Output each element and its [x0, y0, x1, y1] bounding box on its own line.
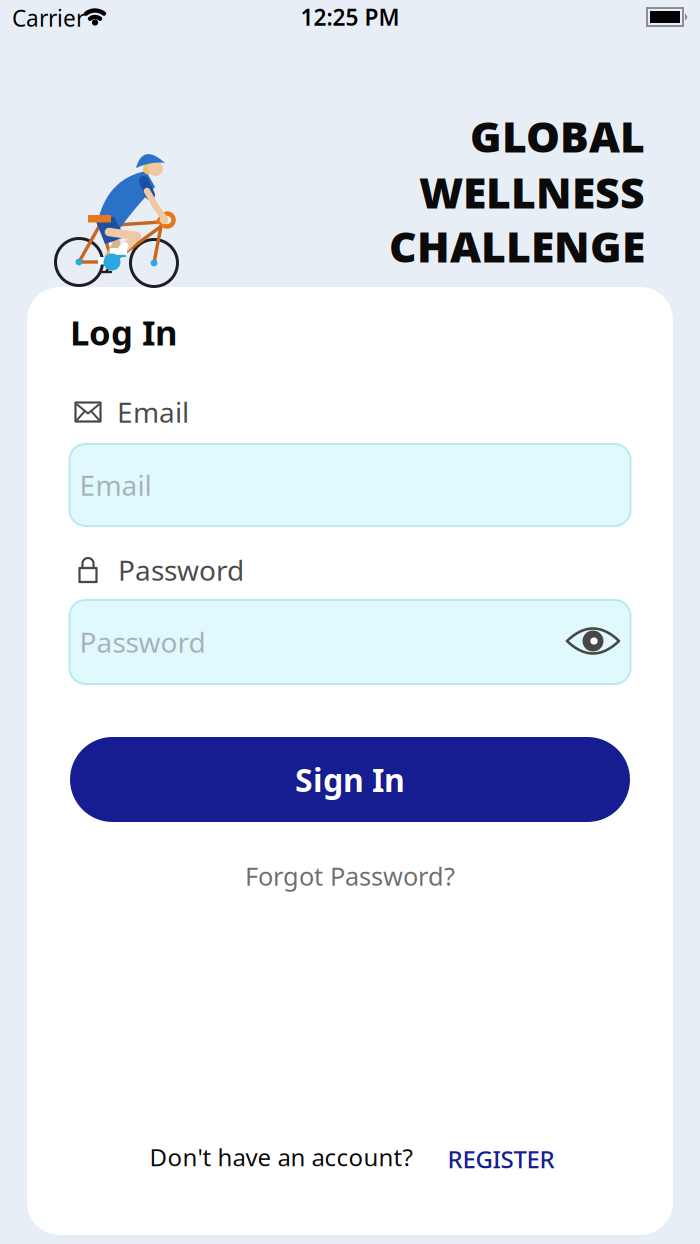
staticText: Password — [118, 551, 244, 589]
button[interactable]: Show password — [561, 617, 625, 665]
staticText: Sign In — [295, 758, 405, 801]
staticText: GLOBAL — [470, 108, 645, 164]
button[interactable]: Password — [69, 600, 630, 684]
staticText: Don't have an account? — [149, 1141, 412, 1173]
button[interactable]: Email — [69, 444, 630, 526]
staticText: Carrier — [12, 3, 85, 33]
staticText: Log In — [70, 309, 178, 355]
staticText: Forgot Password? — [245, 859, 455, 893]
staticText: 12:25 PM — [300, 2, 399, 32]
button[interactable]: Sign In — [70, 737, 630, 822]
staticText: Password — [79, 623, 205, 661]
button[interactable]: REGISTER — [447, 1143, 554, 1175]
staticText: REGISTER — [447, 1143, 554, 1175]
staticText: Email — [79, 466, 151, 504]
button[interactable]: Forgot Password? — [245, 859, 455, 893]
staticText: CHALLENGE — [389, 218, 645, 274]
staticText: WELLNESS — [419, 164, 645, 220]
staticText: Email — [117, 393, 189, 431]
